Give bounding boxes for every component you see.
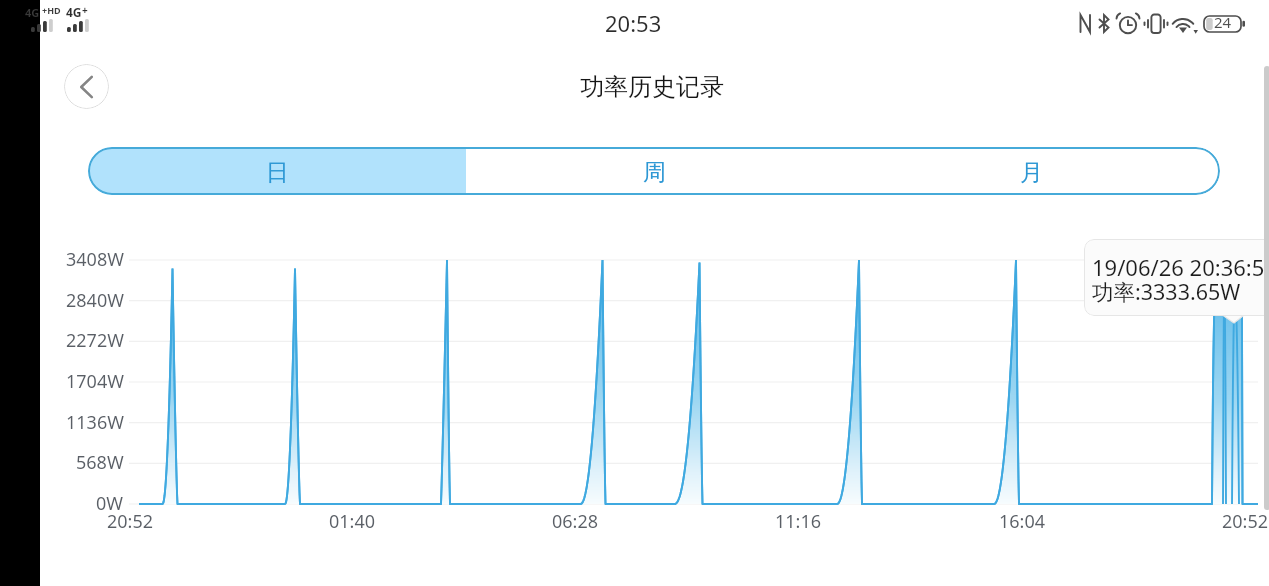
staticText: 19/06/26 20:36:52	[1092, 252, 1269, 276]
staticText: 1704W	[66, 369, 124, 394]
staticText: 24	[1214, 12, 1232, 32]
button[interactable]: 日	[88, 147, 466, 195]
staticText: 20:53	[605, 8, 662, 38]
button[interactable]: 周	[466, 147, 843, 195]
staticText: 月	[1020, 158, 1043, 187]
staticText: 568W	[76, 450, 124, 475]
staticText: 06:28	[552, 509, 599, 534]
staticText: 日	[266, 158, 289, 187]
staticText: 11:16	[775, 509, 822, 534]
staticText: 4G	[25, 5, 40, 20]
staticText: 2840W	[66, 288, 124, 313]
staticText: 01:40	[329, 509, 376, 534]
staticText: 16:04	[999, 509, 1046, 534]
staticText: 20:52	[107, 509, 154, 534]
staticText: 2272W	[66, 328, 124, 353]
button[interactable]: Back	[64, 64, 109, 109]
staticText: +HD	[42, 4, 61, 16]
staticText: 4G	[66, 4, 82, 20]
staticText: 周	[643, 158, 666, 187]
staticText: 功率历史记录	[580, 72, 724, 102]
staticText: 0W	[96, 491, 124, 516]
button[interactable]: 月	[843, 147, 1220, 195]
staticText: 20:52	[1222, 509, 1269, 534]
staticText: 功率:3333.65W	[1092, 277, 1241, 306]
staticText: +	[82, 3, 88, 17]
staticText: 1136W	[66, 410, 124, 435]
staticText: 3408W	[66, 247, 124, 272]
